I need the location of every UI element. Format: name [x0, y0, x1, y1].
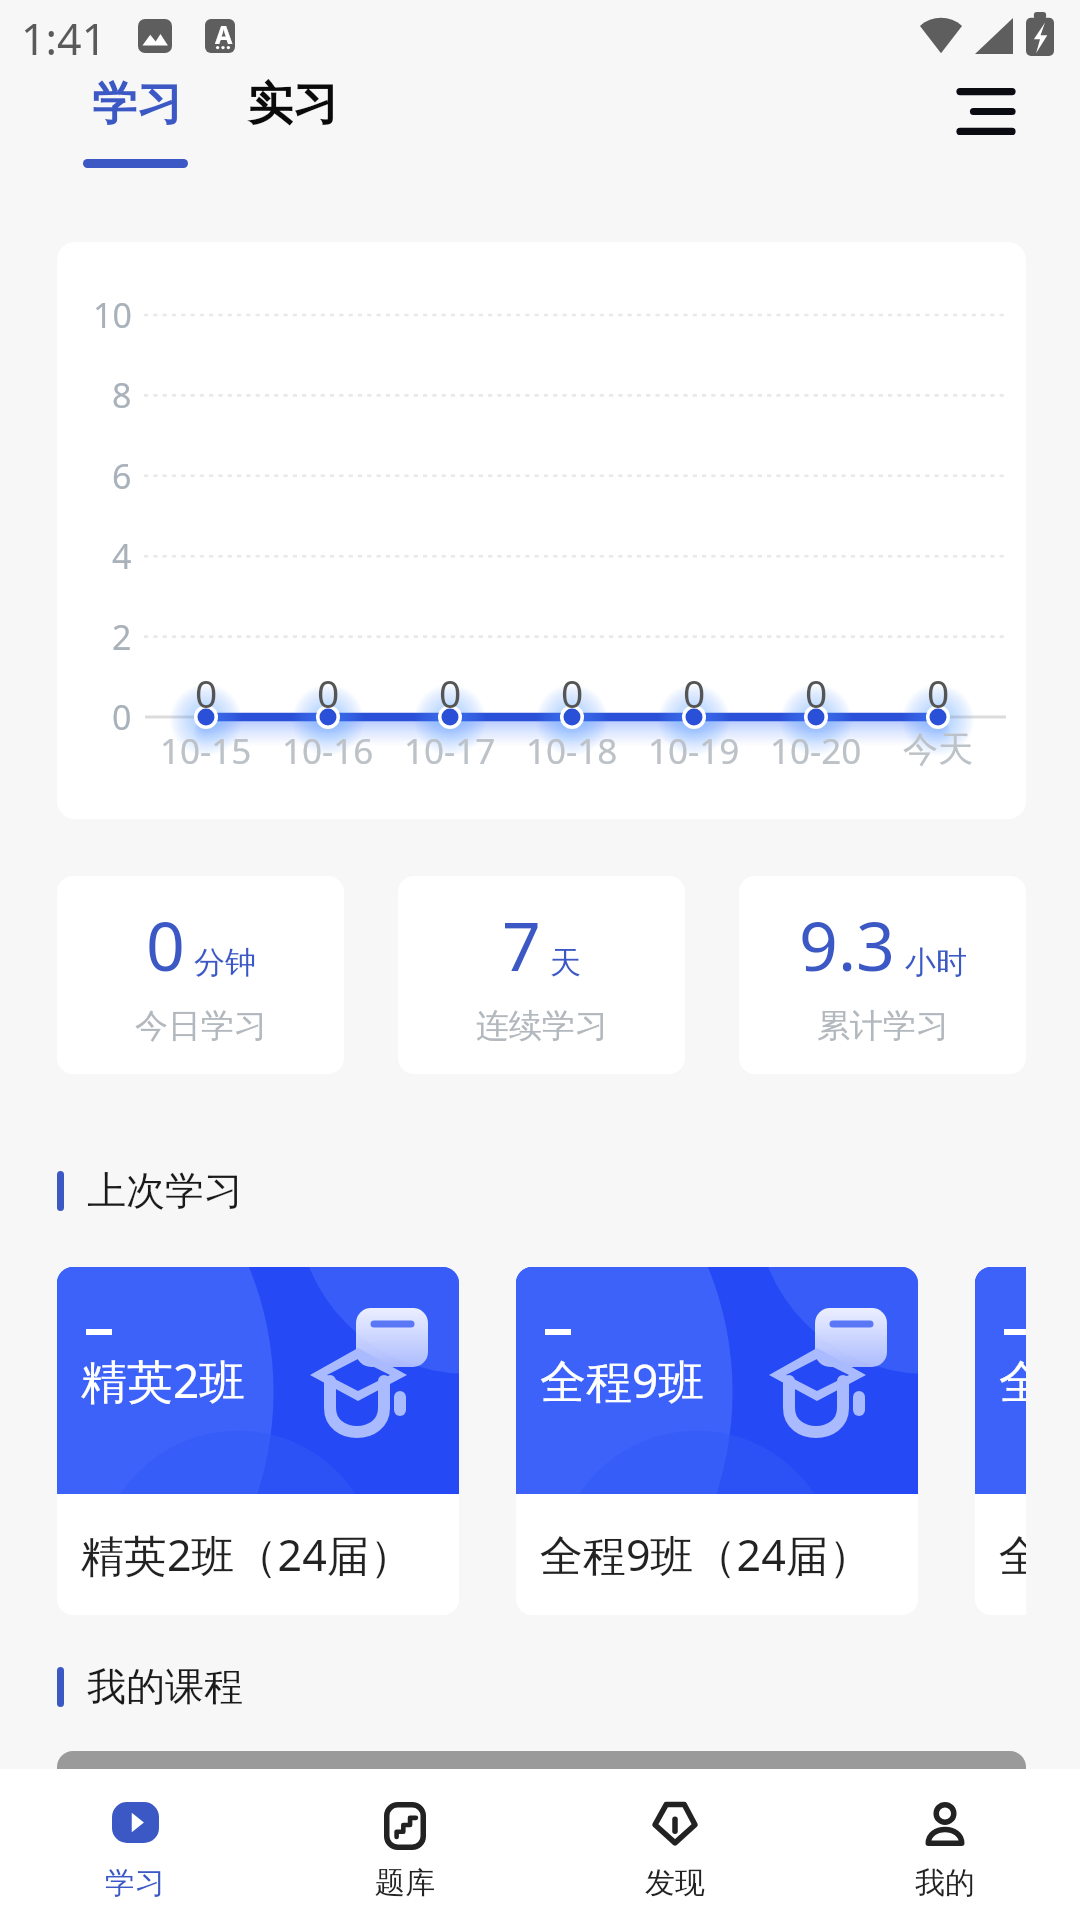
staticText: 全程9班 [540, 1349, 705, 1412]
button[interactable]: 我的课程 [57, 1751, 1026, 1811]
staticText: 全程9班（24届） [540, 1525, 872, 1584]
staticText: 10-17 [404, 727, 496, 775]
staticText: 8 [112, 372, 132, 418]
staticText: 10 [93, 292, 132, 338]
staticText: 累计学习 [817, 1005, 949, 1047]
staticText: 10-18 [526, 727, 618, 775]
staticText: 今天 [903, 727, 973, 771]
button[interactable]: 精英2班 [57, 1267, 459, 1615]
button[interactable]: 题库 [270, 1769, 540, 1920]
staticText: 10-16 [282, 727, 374, 775]
button[interactable]: 学习 [60, 62, 212, 182]
staticText: 6 [112, 453, 132, 499]
button[interactable]: 全程8班 [975, 1267, 1026, 1615]
staticText: 学习 [105, 1864, 165, 1902]
staticText: 10-20 [770, 727, 862, 775]
staticText: 分钟 [194, 943, 256, 982]
staticText: 0 [112, 694, 132, 740]
button[interactable]: 学习 [0, 1769, 270, 1920]
staticText: A [215, 17, 233, 51]
staticText: 精英2班（24届） [81, 1525, 413, 1584]
staticText: 我的 [915, 1864, 975, 1902]
staticText: 发现 [645, 1864, 705, 1902]
staticText: 2 [112, 614, 132, 660]
staticText: 全程8班 [999, 1349, 1026, 1412]
staticText: 上次学习 [87, 1166, 243, 1215]
staticText: 10-19 [648, 727, 740, 775]
staticText: 题库 [375, 1864, 435, 1902]
staticText: 0 [439, 666, 462, 719]
button[interactable]: 我的 [810, 1769, 1080, 1920]
staticText: 精英2班 [81, 1349, 246, 1412]
staticText: 10-15 [160, 727, 252, 775]
button[interactable]: 发现 [540, 1769, 810, 1920]
staticText: 9.3 [799, 898, 896, 991]
staticText: 0 [927, 666, 950, 719]
staticText: 我的课程 [87, 1662, 243, 1711]
button[interactable]: 7 [398, 876, 685, 1074]
button[interactable]: 0 [57, 876, 344, 1074]
staticText: 7 [502, 898, 541, 991]
staticText: 学习 [92, 76, 182, 133]
button[interactable]: Menu [930, 55, 1042, 167]
staticText: 0 [561, 666, 584, 719]
staticText: 0 [146, 898, 185, 991]
staticText: 实习 [248, 76, 338, 133]
staticText: 0 [195, 666, 218, 719]
staticText: 天 [550, 943, 581, 982]
staticText: 小时 [905, 943, 967, 982]
staticText: 0 [317, 666, 340, 719]
button[interactable]: 9.3 [739, 876, 1026, 1074]
staticText: 1:41 [21, 9, 107, 68]
staticText: 全程8班（24届） [999, 1525, 1026, 1584]
staticText: 连续学习 [476, 1005, 608, 1047]
button[interactable]: 实习 [216, 62, 368, 162]
button[interactable]: 10 [57, 242, 1026, 819]
staticText: 0 [683, 666, 706, 719]
staticText: 4 [112, 533, 132, 579]
staticText: 今日学习 [135, 1005, 267, 1047]
button[interactable]: 全程9班 [516, 1267, 918, 1615]
staticText: 0 [805, 666, 828, 719]
